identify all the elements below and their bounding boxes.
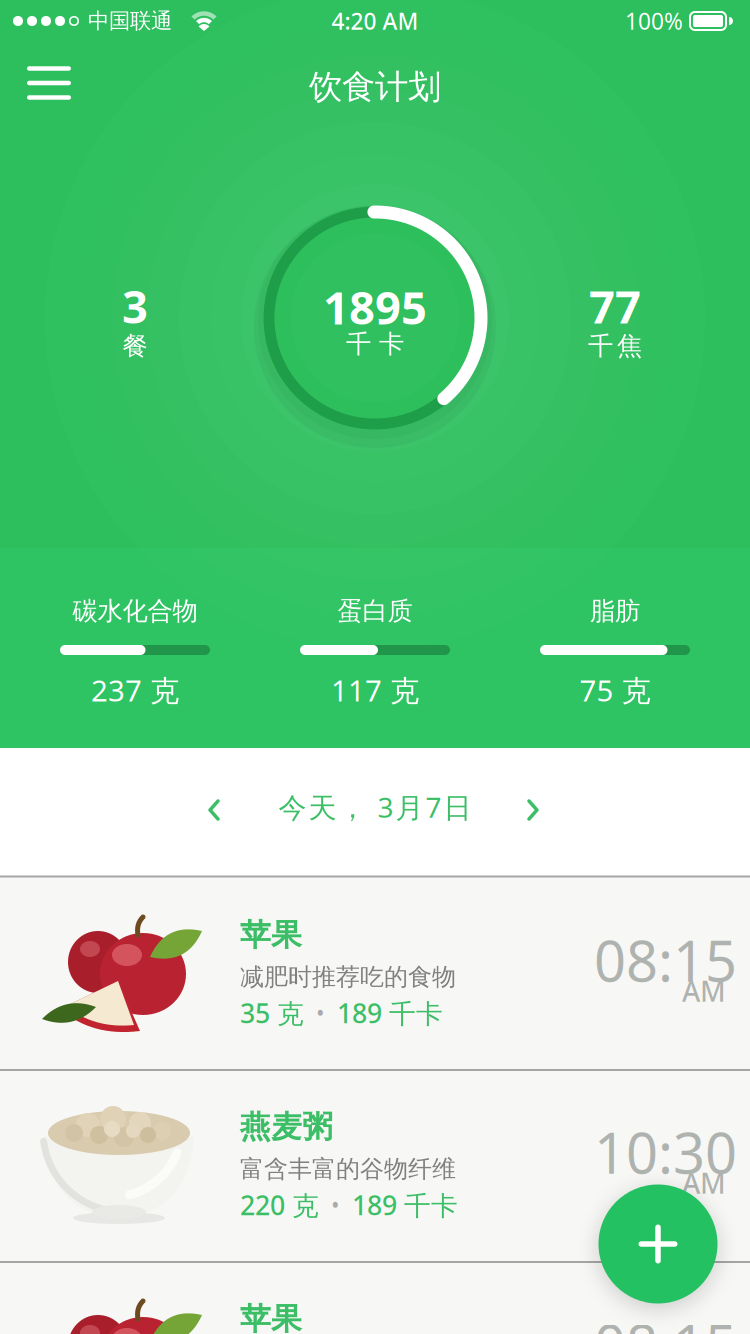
staticText: 220 克 — [240, 1187, 319, 1223]
staticText: • — [304, 998, 337, 1028]
button[interactable]: Next day — [511, 788, 555, 832]
staticText: 千焦 — [588, 330, 642, 361]
button[interactable]: Menu — [27, 66, 71, 100]
staticText: 1895 — [323, 277, 427, 337]
button[interactable]: 苹果 — [0, 877, 750, 1069]
staticText: 77 — [589, 276, 641, 336]
staticText: 燕麦粥 — [240, 1108, 333, 1146]
staticText: 08:15 — [594, 923, 737, 997]
staticText: 08:15 — [594, 1307, 737, 1334]
staticText: AM — [682, 1164, 726, 1202]
staticText: • — [319, 1190, 352, 1220]
staticText: 苹果 — [240, 916, 302, 954]
staticText: 富含丰富的谷物纤维 — [240, 1154, 456, 1184]
staticText: 10:30 — [594, 1115, 737, 1189]
staticText: 中国联通 — [88, 8, 172, 34]
staticText: 189 千卡 — [352, 1187, 458, 1223]
button[interactable]: Previous day — [192, 788, 236, 832]
staticText: 脂肪 — [590, 595, 640, 626]
staticText: 237 克 — [91, 670, 179, 709]
staticText: AM — [682, 972, 726, 1010]
staticText: 35 克 — [240, 995, 304, 1031]
staticText: 蛋白质 — [337, 595, 412, 626]
staticText: 100% — [625, 6, 683, 36]
staticText: 117 克 — [331, 670, 419, 709]
staticText: 189 千卡 — [337, 995, 443, 1031]
staticText: 减肥时推荐吃的食物 — [240, 962, 456, 992]
staticText: 饮食计划 — [309, 66, 441, 107]
staticText: 千卡 — [346, 328, 404, 359]
staticText: 75 克 — [579, 670, 650, 709]
staticText: 碳水化合物 — [72, 595, 197, 626]
button[interactable]: 燕麦粥 — [0, 1069, 750, 1261]
staticText: 4:20 AM — [331, 6, 418, 36]
button[interactable]: 苹果 — [0, 1261, 750, 1334]
button[interactable]: Add meal — [598, 1184, 717, 1303]
staticText: 3 — [122, 276, 148, 336]
staticText: 苹果 — [240, 1300, 302, 1334]
staticText: 今天， 3月7日 — [278, 788, 471, 826]
staticText: 餐 — [122, 330, 147, 361]
